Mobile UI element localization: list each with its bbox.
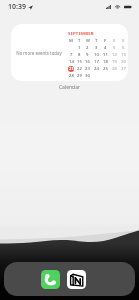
staticText: 28: [69, 73, 74, 79]
staticText: 14: [69, 59, 74, 65]
staticText: 10: [94, 52, 99, 58]
button[interactable]: Phone: [41, 270, 60, 289]
staticText: 30: [85, 73, 90, 79]
staticText: Calendar: [0, 84, 139, 91]
staticText: 26: [112, 66, 117, 72]
staticText: F: [104, 38, 107, 44]
staticText: 27: [121, 66, 126, 72]
staticText: T: [95, 38, 98, 44]
staticText: 2: [86, 45, 89, 51]
staticText: 13: [121, 52, 126, 58]
staticText: 1: [78, 45, 81, 51]
staticText: 15: [77, 59, 82, 65]
staticText: 6: [122, 45, 125, 51]
staticText: T: [78, 38, 81, 44]
staticText: 19: [112, 59, 117, 65]
staticText: 8: [78, 52, 81, 58]
button[interactable]: Notion: [67, 270, 86, 289]
staticText: 11: [103, 52, 108, 58]
staticText: 21: [69, 66, 74, 72]
staticText: 10:39: [8, 2, 26, 12]
staticText: 22: [77, 66, 82, 72]
staticText: 20: [121, 59, 126, 65]
button[interactable]: No more events today: [11, 24, 128, 81]
staticText: 3: [95, 45, 98, 51]
staticText: M: [69, 38, 73, 44]
staticText: 9: [86, 52, 89, 58]
staticText: 12: [112, 52, 117, 58]
staticText: 18: [103, 59, 108, 65]
staticText: S: [113, 38, 116, 44]
staticText: W: [86, 38, 90, 44]
staticText: 5: [113, 45, 116, 51]
staticText: 7: [70, 52, 73, 58]
staticText: 16: [85, 59, 90, 65]
staticText: 23: [85, 66, 90, 72]
staticText: 24: [94, 66, 99, 72]
staticText: 29: [77, 73, 82, 79]
staticText: SEPTEMBER: [68, 31, 94, 37]
staticText: 25: [103, 66, 108, 72]
staticText: S: [122, 38, 125, 44]
staticText: 17: [94, 59, 99, 65]
staticText: No more events today: [16, 50, 62, 56]
staticText: 4: [104, 45, 107, 51]
